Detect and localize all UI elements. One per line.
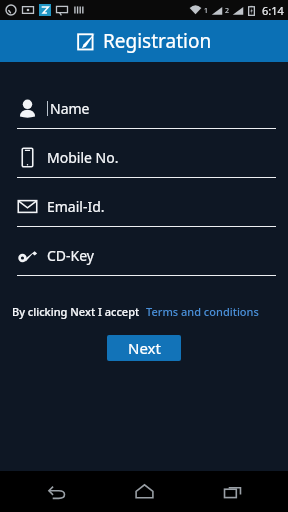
button[interactable]: Home [112,471,176,512]
button[interactable]: Name [0,88,288,137]
button[interactable]: Terms and conditions [146,304,259,319]
button[interactable]: Mobile No. [0,137,288,186]
staticText: By clicking Next I accept [12,304,140,319]
staticText: 2 [225,6,230,16]
staticText: CD-Key [47,246,94,265]
button[interactable]: Recent apps [200,471,264,512]
staticText: 6:14 [262,3,284,18]
staticText: Email-Id. [47,197,105,216]
button[interactable]: Back [24,471,88,512]
staticText: Next [128,338,161,358]
staticText: Name [50,99,90,118]
button[interactable]: Next [107,335,181,361]
staticText: Registration [103,28,212,54]
staticText: Mobile No. [47,148,119,167]
staticText: Terms and conditions [146,304,259,319]
staticText: 1 [204,6,209,16]
button[interactable]: Email-Id. [0,186,288,235]
button[interactable]: CD-Key [0,235,288,284]
